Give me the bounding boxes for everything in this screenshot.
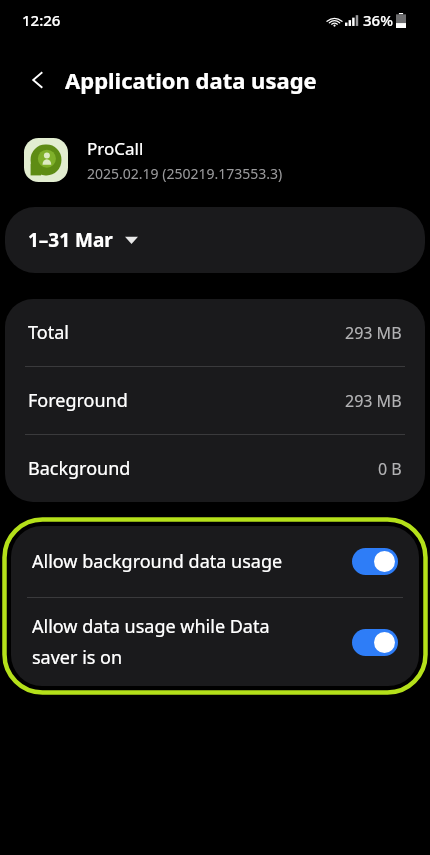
staticText: 36% [363,10,393,30]
button[interactable]: Total [5,299,425,366]
button[interactable]: 1–31 Mar [5,207,425,273]
staticText: Total [28,320,69,345]
button[interactable]: Allow data usage while Data [11,598,419,686]
staticText: 0 B [378,458,402,480]
button[interactable]: Foreground [5,367,425,434]
staticText: Foreground [28,388,128,413]
staticText: saver is on [32,645,123,670]
staticText: 12:26 [22,10,61,30]
staticText: Background [28,456,131,481]
staticText: 293 MB [345,390,402,412]
staticText: Allow data usage while Data [32,614,270,639]
button[interactable]: Background [5,435,425,502]
staticText: 2025.02.19 (250219.173553.3) [87,164,283,183]
staticText: 293 MB [345,322,402,344]
staticText: Allow background data usage [32,549,283,574]
staticText: ProCall [87,137,144,160]
button[interactable]: Allow background data usage [11,526,419,597]
button[interactable]: Toggle on [352,548,398,575]
button[interactable]: Back [14,56,62,104]
button[interactable]: Toggle on [352,629,398,656]
staticText: 1–31 Mar [28,227,113,253]
staticText: Application data usage [65,65,317,95]
